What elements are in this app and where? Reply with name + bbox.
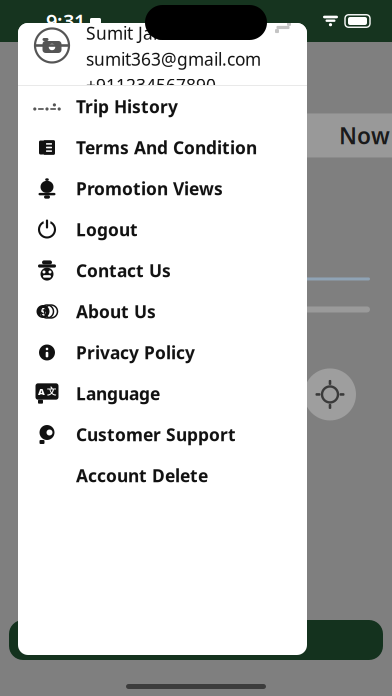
staticText: Privacy Policy (76, 341, 195, 364)
staticText: Account Delete (76, 464, 208, 487)
staticText: Trip History (76, 95, 178, 118)
staticText: Contact Us (76, 259, 171, 282)
staticText: Now (339, 120, 390, 150)
staticText: A (38, 385, 45, 398)
button[interactable]: Sumit Jaiswal (18, 23, 307, 85)
button[interactable]: A (18, 373, 307, 414)
button[interactable]: Contact Us (18, 250, 307, 291)
staticText: en (284, 8, 305, 31)
button[interactable]: S (18, 291, 307, 332)
staticText: Logout (76, 218, 138, 241)
button[interactable]: Logout (18, 209, 307, 250)
staticText: sumit363@gmail.com (86, 47, 261, 70)
button[interactable]: Terms And Condition (18, 127, 307, 168)
staticText: Sumit Jaiswal (86, 21, 193, 44)
staticText: Terms And Condition (76, 136, 257, 159)
button[interactable]: Current location (304, 368, 356, 420)
staticText: 文 (47, 386, 56, 397)
button[interactable]: Promotion Views (18, 168, 307, 209)
staticText: +911234567890 (86, 73, 216, 96)
staticText: ईट (284, 78, 298, 95)
staticText: Promotion Views (76, 177, 223, 200)
staticText: S (40, 304, 46, 319)
staticText: Language (76, 382, 160, 405)
staticText: About Us (76, 300, 156, 323)
button[interactable]: Trip History (18, 86, 307, 127)
button[interactable]: Account Delete (18, 455, 307, 496)
button[interactable]: Privacy Policy (18, 332, 307, 373)
button[interactable]: Customer Support (18, 414, 307, 455)
staticText: 9:31 (46, 8, 85, 34)
button[interactable]: Now (284, 113, 392, 157)
staticText: Customer Support (76, 423, 236, 446)
